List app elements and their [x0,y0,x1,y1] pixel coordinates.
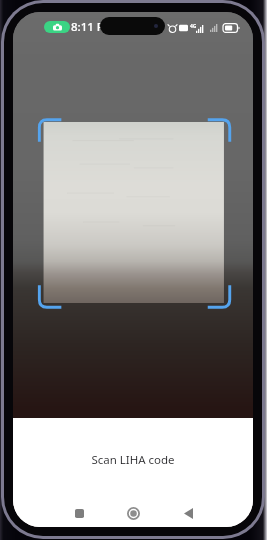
button[interactable]: Back [175,500,201,526]
staticText: 4G [190,23,197,30]
staticText: 8:11 P [71,19,104,35]
button[interactable]: Scan LIHA code [13,418,253,527]
button[interactable]: Home [120,500,146,526]
button[interactable]: Recent apps [66,500,92,526]
staticText: Scan LIHA code [91,452,175,468]
button[interactable]: Camera in use [44,21,70,33]
